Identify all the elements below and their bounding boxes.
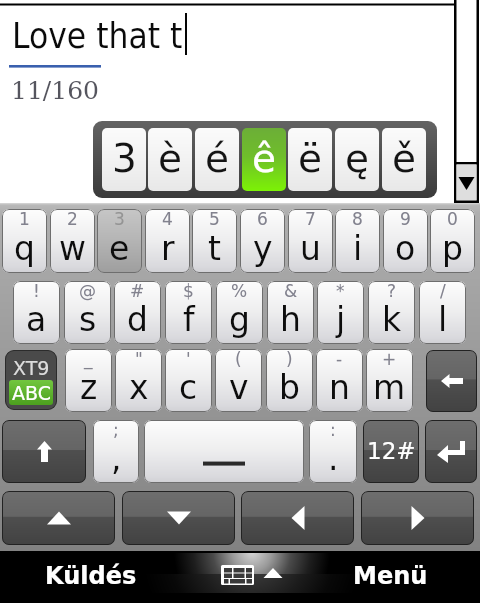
- staticText: 4: [162, 209, 173, 229]
- staticText: ê: [252, 136, 276, 181]
- staticText: x: [129, 368, 149, 406]
- staticText: d: [127, 300, 148, 338]
- button[interactable]: ?: [368, 281, 415, 344]
- staticText: e: [109, 229, 130, 267]
- button[interactable]: #: [114, 281, 161, 344]
- staticText: 3: [114, 209, 125, 229]
- button[interactable]: Space: [144, 420, 304, 483]
- button[interactable]: Shift: [2, 420, 86, 483]
- button[interactable]: &: [267, 281, 314, 344]
- button[interactable]: 9: [383, 209, 428, 273]
- staticText: ABC: [12, 382, 51, 404]
- staticText: .: [328, 439, 339, 477]
- staticText: l: [438, 300, 448, 338]
- button[interactable]: Enter: [425, 420, 477, 483]
- staticText: 6: [257, 209, 268, 229]
- staticText: g: [229, 300, 250, 338]
- button[interactable]: 3: [102, 128, 146, 191]
- staticText: _: [84, 349, 93, 369]
- staticText: /: [440, 281, 446, 301]
- button[interactable]: +: [366, 349, 413, 412]
- button[interactable]: @: [64, 281, 111, 344]
- staticText: r: [161, 229, 175, 267]
- button[interactable]: 8: [335, 209, 380, 273]
- staticText: k: [382, 300, 402, 338]
- staticText: Menü: [353, 562, 428, 590]
- staticText: j: [336, 300, 346, 338]
- button[interactable]: Hide keyboard: [206, 551, 296, 603]
- staticText: v: [229, 368, 249, 406]
- button[interactable]: ë: [288, 128, 332, 191]
- button[interactable]: Menü: [300, 551, 480, 603]
- button[interactable]: 3: [97, 209, 142, 273]
- staticText: ': [186, 349, 191, 369]
- staticText: Küldés: [45, 562, 137, 590]
- button[interactable]: è: [148, 128, 192, 191]
- staticText: f: [183, 300, 195, 338]
- button[interactable]: ;: [93, 420, 139, 483]
- button[interactable]: XT9 ABC input mode: [5, 350, 57, 410]
- staticText: ę: [345, 136, 369, 181]
- staticText: 9: [400, 209, 411, 229]
- staticText: ë: [298, 136, 322, 181]
- staticText: y: [253, 229, 273, 267]
- button[interactable]: Left: [241, 491, 354, 545]
- staticText: 5: [209, 209, 220, 229]
- button[interactable]: /: [419, 281, 466, 344]
- button[interactable]: 2: [50, 209, 95, 273]
- button[interactable]: Küldés: [0, 551, 181, 603]
- button[interactable]: 0: [430, 209, 475, 273]
- staticText: a: [26, 300, 47, 338]
- button[interactable]: -: [316, 349, 363, 412]
- staticText: Love that t: [12, 16, 183, 57]
- staticText: h: [280, 300, 301, 338]
- button[interactable]: ě: [382, 128, 426, 191]
- staticText: $: [183, 281, 194, 301]
- button[interactable]: :: [309, 420, 357, 483]
- button[interactable]: Down: [122, 491, 235, 545]
- button[interactable]: 6: [240, 209, 285, 273]
- button[interactable]: Right: [361, 491, 474, 545]
- staticText: 12#: [367, 438, 416, 465]
- staticText: *: [336, 281, 345, 301]
- staticText: t: [208, 229, 221, 267]
- button[interactable]: ': [165, 349, 212, 412]
- staticText: ): [286, 349, 293, 369]
- button[interactable]: *: [317, 281, 364, 344]
- staticText: u: [300, 229, 321, 267]
- staticText: &: [284, 281, 298, 301]
- staticText: %: [231, 281, 248, 301]
- staticText: ě: [392, 136, 416, 181]
- button[interactable]: é: [195, 128, 239, 191]
- button[interactable]: Numbers and symbols: [363, 420, 419, 483]
- staticText: o: [395, 229, 416, 267]
- staticText: m: [373, 368, 406, 406]
- staticText: b: [279, 368, 300, 406]
- staticText: ": [135, 349, 143, 369]
- button[interactable]: 4: [145, 209, 190, 273]
- button[interactable]: 5: [192, 209, 237, 273]
- staticText: 1: [19, 209, 30, 229]
- button[interactable]: 7: [288, 209, 333, 273]
- button[interactable]: %: [216, 281, 263, 344]
- button[interactable]: Backspace: [426, 350, 477, 412]
- staticText: 3: [112, 136, 137, 181]
- staticText: XT9: [13, 357, 50, 379]
- button[interactable]: Up: [2, 491, 115, 545]
- button[interactable]: ê: [242, 128, 286, 191]
- button[interactable]: _: [65, 349, 112, 412]
- staticText: 8: [352, 209, 363, 229]
- button[interactable]: (: [215, 349, 262, 412]
- staticText: #: [130, 281, 145, 301]
- staticText: c: [179, 368, 198, 406]
- button[interactable]: 1: [2, 209, 47, 273]
- button[interactable]: ): [266, 349, 313, 412]
- staticText: n: [329, 368, 350, 406]
- staticText: 0: [447, 209, 458, 229]
- button[interactable]: ": [115, 349, 162, 412]
- button[interactable]: !: [13, 281, 60, 344]
- button[interactable]: $: [165, 281, 212, 344]
- staticText: q: [14, 229, 35, 267]
- staticText: 7: [305, 209, 316, 229]
- button[interactable]: ę: [335, 128, 379, 191]
